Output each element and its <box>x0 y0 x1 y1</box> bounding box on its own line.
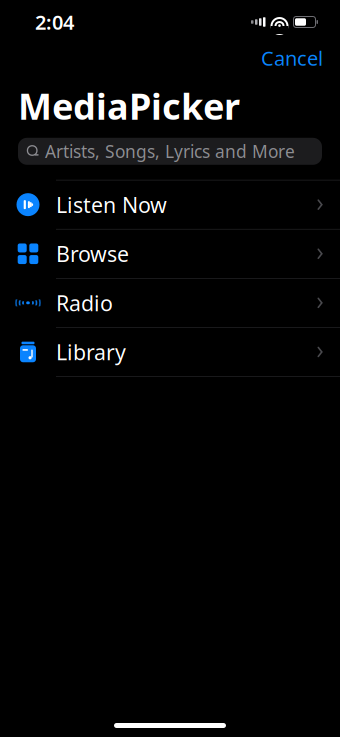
staticText: MediaPicker <box>18 82 240 130</box>
staticText: Cancel <box>261 45 323 71</box>
staticText: Browse <box>56 240 129 268</box>
staticText: Listen Now <box>56 190 167 219</box>
button[interactable]: Radio <box>0 279 340 327</box>
staticText: Radio <box>56 289 113 317</box>
staticText: Artists, Songs, Lyrics and More <box>45 140 295 163</box>
button[interactable]: Listen Now <box>0 180 340 229</box>
staticText: 2:04 <box>35 9 74 35</box>
button[interactable]: Artists, Songs, Lyrics and More <box>18 138 322 165</box>
button[interactable]: Browse <box>0 229 340 278</box>
staticText: Library <box>56 338 126 366</box>
button[interactable]: Cancel <box>253 41 331 75</box>
button[interactable]: Library <box>0 328 340 376</box>
